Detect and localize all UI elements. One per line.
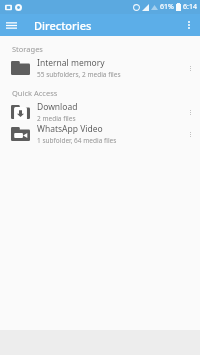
button[interactable]: Open navigation drawer <box>0 14 22 36</box>
staticText: Storages <box>12 44 43 54</box>
staticText: 55 subfolders, 2 media files <box>37 70 121 79</box>
staticText: 61% <box>160 2 174 12</box>
staticText: Internal memory <box>37 57 105 69</box>
button[interactable]: Download <box>0 101 200 123</box>
button[interactable]: WhatsApp Video <box>0 123 200 145</box>
staticText: Quick Access <box>12 88 58 98</box>
staticText: Download <box>37 101 78 113</box>
button[interactable]: More options for Download <box>180 102 200 122</box>
button[interactable]: More options for Internal memory <box>180 58 200 78</box>
button[interactable]: More options for WhatsApp Video <box>180 124 200 144</box>
staticText: 2 media files <box>37 114 76 123</box>
button[interactable]: Internal memory <box>0 57 200 79</box>
staticText: WhatsApp Video <box>37 123 103 135</box>
staticText: Directories <box>34 18 92 33</box>
staticText: 6:14 <box>183 2 197 12</box>
staticText: 1 subfolder, 64 media files <box>37 136 117 145</box>
button[interactable]: More options <box>178 14 200 36</box>
